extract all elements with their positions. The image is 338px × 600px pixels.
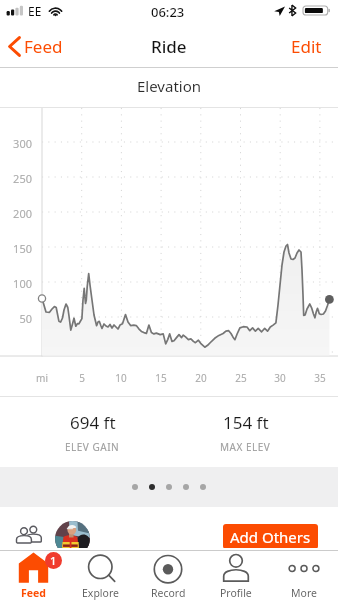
staticText: Ride (151, 35, 187, 58)
staticText: 250 (2, 171, 32, 186)
staticText: Record (151, 586, 186, 600)
button[interactable]: 694 ft (16, 398, 169, 466)
staticText: 25 (227, 371, 255, 385)
button[interactable]: More (270, 551, 338, 600)
staticText: ELEV GAIN (65, 440, 120, 454)
button[interactable]: Edit (275, 27, 338, 66)
staticText: 20 (187, 371, 215, 385)
staticText: 30 (266, 371, 294, 385)
staticText: 5 (68, 371, 96, 385)
staticText: 150 (2, 241, 32, 256)
staticText: 154 ft (223, 411, 269, 434)
staticText: Elevation (137, 76, 202, 96)
button[interactable]: Record (134, 551, 202, 600)
staticText: 15 (147, 371, 175, 385)
staticText: Explore (82, 586, 119, 600)
staticText: 694 ft (70, 411, 116, 434)
button[interactable]: 154 ft (169, 398, 322, 466)
staticText: 50 (2, 311, 32, 326)
staticText: More (291, 586, 317, 600)
staticText: 35 (306, 371, 334, 385)
button[interactable]: Feed (0, 551, 67, 600)
button[interactable]: Athlete avatar (55, 521, 90, 556)
staticText: 100 (2, 276, 32, 291)
staticText: 1 (50, 553, 57, 568)
button[interactable]: Explore (67, 551, 134, 600)
staticText: EE (28, 3, 42, 19)
staticText: 200 (2, 206, 32, 221)
staticText: Feed (21, 586, 46, 600)
staticText: Add Others (230, 527, 311, 547)
staticText: 300 (2, 136, 32, 151)
staticText: MAX ELEV (220, 440, 271, 454)
staticText: Edit (291, 35, 322, 58)
button[interactable]: Add Others (223, 524, 318, 549)
staticText: 10 (107, 371, 135, 385)
staticText: Profile (220, 586, 252, 600)
staticText: mi (28, 371, 56, 385)
button[interactable]: Feed (0, 29, 73, 64)
button[interactable]: Profile (202, 551, 270, 600)
button[interactable]: Participants (15, 527, 43, 547)
staticText: Feed (24, 35, 63, 58)
staticText: 06:23 (151, 3, 185, 21)
